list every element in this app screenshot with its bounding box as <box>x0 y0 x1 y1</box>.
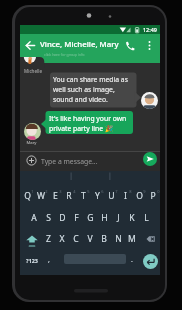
button[interactable]: Q <box>20 189 34 203</box>
staticText: Q <box>24 190 31 202</box>
staticText: Type a message... <box>41 157 98 166</box>
button[interactable]: P <box>146 189 160 203</box>
button[interactable]: C <box>69 232 83 246</box>
staticText: 7 <box>115 189 118 194</box>
staticText: D <box>59 212 66 224</box>
staticText: 12:49 <box>143 26 157 33</box>
staticText: You can share media as well such as imag… <box>53 75 135 104</box>
staticText: C <box>73 233 79 245</box>
staticText: 1 <box>31 189 34 194</box>
staticText: It's like having your own private party … <box>49 114 133 133</box>
staticText: 0 <box>157 189 160 194</box>
button[interactable]: Mary <box>24 123 41 140</box>
staticText: Vince, Michelle, Mary <box>40 39 119 50</box>
button[interactable]: U <box>104 189 118 203</box>
button[interactable]: Add attachment <box>26 155 37 166</box>
staticText: Michelle <box>23 68 43 74</box>
staticText: G <box>87 212 94 224</box>
staticText: P <box>150 190 156 202</box>
button[interactable]: A <box>27 211 41 225</box>
staticText: Z <box>46 233 51 245</box>
staticText: 9 <box>143 189 146 194</box>
staticText: Y <box>95 190 100 202</box>
staticText: F <box>74 212 79 224</box>
button[interactable]: V <box>83 232 97 246</box>
staticText: S <box>46 212 51 224</box>
staticText: 8 <box>129 189 132 194</box>
button[interactable]: L <box>139 211 153 225</box>
button[interactable]: Vince <box>141 92 158 109</box>
staticText: A <box>31 212 37 224</box>
staticText: 6 <box>101 189 104 194</box>
button[interactable]: More options <box>144 40 155 51</box>
staticText: 3 <box>59 189 62 194</box>
staticText: M <box>128 233 136 245</box>
button[interactable]: E <box>48 189 62 203</box>
button[interactable]: Back <box>24 39 37 52</box>
button[interactable]: Backspace <box>145 234 156 244</box>
button[interactable] <box>20 34 160 63</box>
button[interactable]: Shift <box>26 233 38 247</box>
button[interactable]: D <box>55 211 69 225</box>
button[interactable]: T <box>76 189 90 203</box>
staticText: 2 <box>45 189 48 194</box>
staticText: 5 <box>87 189 90 194</box>
button[interactable]: Michelle <box>24 51 36 63</box>
staticText: J <box>117 212 120 224</box>
staticText: I <box>124 190 127 202</box>
button[interactable]: Call <box>124 40 135 51</box>
button[interactable]: O <box>132 189 146 203</box>
staticText: R <box>66 190 72 202</box>
button[interactable] <box>20 151 160 171</box>
staticText: N <box>115 233 122 245</box>
staticText: click here for group info <box>44 52 85 57</box>
button[interactable]: Enter <box>143 254 158 269</box>
button[interactable]: Send <box>143 152 157 166</box>
button[interactable]: X <box>55 232 69 246</box>
button[interactable]: G <box>83 211 97 225</box>
staticText: L <box>144 212 149 224</box>
button[interactable]: J <box>111 211 125 225</box>
staticText: . <box>131 255 133 265</box>
button[interactable]: Z <box>41 232 55 246</box>
button[interactable]: B <box>97 232 111 246</box>
staticText: K <box>129 212 135 224</box>
button[interactable]: N <box>111 232 125 246</box>
staticText: X <box>59 233 65 245</box>
staticText: Mary <box>20 140 43 146</box>
staticText: , <box>48 255 50 265</box>
staticText: H <box>101 212 108 224</box>
button[interactable]: ?123 <box>21 250 43 271</box>
staticText: ?123 <box>26 257 38 264</box>
button[interactable]: I <box>118 189 132 203</box>
button[interactable]: , <box>42 253 56 267</box>
staticText: O <box>136 190 143 202</box>
button[interactable]: F <box>69 211 83 225</box>
button[interactable]: M <box>125 232 139 246</box>
staticText: W <box>37 190 45 202</box>
staticText: V <box>87 233 93 245</box>
button[interactable]: S <box>41 211 55 225</box>
button[interactable]: . <box>125 253 139 267</box>
button[interactable]: R <box>62 189 76 203</box>
button[interactable]: H <box>97 211 111 225</box>
staticText: T <box>81 190 86 202</box>
button[interactable]: W <box>34 189 48 203</box>
staticText: 4 <box>73 189 76 194</box>
staticText: B <box>101 233 107 245</box>
staticText: E <box>53 190 58 202</box>
staticText: U <box>108 190 115 202</box>
button[interactable]: Y <box>90 189 104 203</box>
button[interactable]: K <box>125 211 139 225</box>
